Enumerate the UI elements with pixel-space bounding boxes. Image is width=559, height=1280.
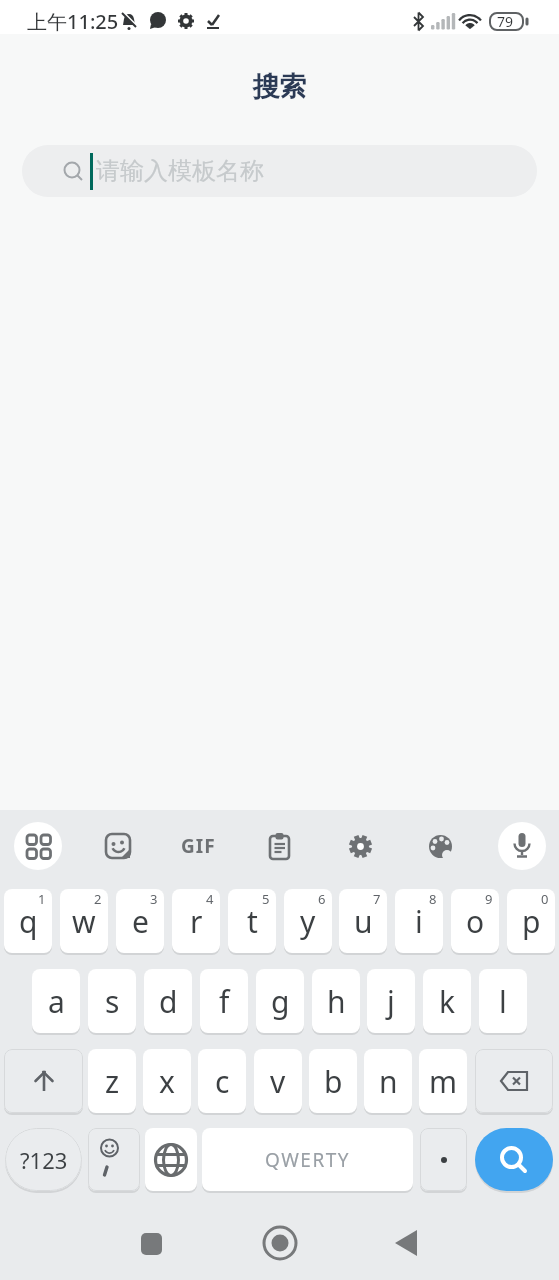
staticText: t	[247, 901, 258, 942]
button[interactable]: l	[479, 969, 527, 1033]
staticText: g	[271, 981, 290, 1022]
button[interactable]: d	[144, 969, 192, 1033]
staticText: 4	[206, 890, 214, 908]
button[interactable]: QWERTY	[202, 1128, 413, 1191]
staticText: m	[429, 1061, 458, 1102]
staticText: h	[327, 981, 346, 1022]
staticText: QWERTY	[265, 1147, 351, 1173]
staticText: 0	[541, 890, 549, 908]
staticText: k	[439, 981, 456, 1022]
button[interactable]: e	[116, 889, 164, 953]
staticText: e	[132, 901, 149, 942]
staticText: f	[219, 981, 230, 1022]
staticText: 9	[485, 890, 493, 908]
staticText: y	[300, 901, 316, 942]
button[interactable]: n	[364, 1049, 412, 1113]
button[interactable]: x	[143, 1049, 191, 1113]
staticText: q	[19, 901, 38, 942]
staticText: i	[415, 901, 423, 942]
staticText: 2	[94, 890, 102, 908]
staticText: c	[215, 1061, 230, 1102]
staticText: o	[466, 901, 485, 942]
button[interactable]: g	[256, 969, 304, 1033]
button[interactable]: z	[88, 1049, 136, 1113]
staticText: b	[324, 1061, 343, 1102]
button[interactable]: t	[228, 889, 276, 953]
button[interactable]: b	[309, 1049, 357, 1113]
staticText: w	[72, 901, 96, 942]
staticText: 79	[497, 12, 514, 31]
button[interactable]: v	[254, 1049, 302, 1113]
staticText: v	[270, 1061, 286, 1102]
button[interactable]	[94, 832, 142, 860]
staticText: 8	[429, 890, 437, 908]
staticText: x	[159, 1061, 175, 1102]
button[interactable]	[498, 822, 546, 870]
staticText: 7	[373, 890, 381, 908]
button[interactable]: s	[88, 969, 136, 1033]
staticText: j	[387, 981, 395, 1022]
button[interactable]: k	[423, 969, 471, 1033]
button[interactable]: w	[60, 889, 108, 953]
staticText: GIF	[181, 833, 216, 859]
button[interactable]	[420, 1128, 467, 1191]
staticText: p	[522, 901, 541, 942]
button[interactable]: p	[507, 889, 555, 953]
button[interactable]: f	[200, 969, 248, 1033]
button[interactable]	[4, 1049, 83, 1113]
staticText: ?123	[20, 1145, 68, 1175]
staticText: 上午11:25	[27, 8, 119, 35]
button[interactable]	[475, 1128, 553, 1191]
button[interactable]: y	[284, 889, 332, 953]
staticText: 6	[318, 890, 326, 908]
staticText: r	[190, 901, 203, 942]
staticText: n	[379, 1061, 398, 1102]
button[interactable]: j	[367, 969, 415, 1033]
button[interactable]: i	[395, 889, 443, 953]
button[interactable]	[14, 822, 62, 870]
button[interactable]	[88, 1128, 140, 1191]
staticText: l	[499, 981, 507, 1022]
staticText: z	[105, 1061, 120, 1102]
button[interactable]: a	[32, 969, 80, 1033]
staticText: a	[48, 981, 65, 1022]
button[interactable]	[255, 832, 303, 860]
staticText: 5	[262, 890, 270, 908]
button[interactable]: u	[339, 889, 387, 953]
button[interactable]	[416, 832, 464, 860]
staticText: d	[159, 981, 178, 1022]
button[interactable]	[475, 1049, 553, 1113]
staticText: 搜索	[0, 70, 559, 104]
button[interactable]: o	[451, 889, 499, 953]
staticText: 3	[150, 890, 158, 908]
staticText: s	[105, 981, 120, 1022]
button[interactable]	[336, 832, 384, 860]
staticText: 请输入模板名称	[96, 156, 264, 186]
button[interactable]: m	[419, 1049, 467, 1113]
button[interactable]: r	[172, 889, 220, 953]
staticText: u	[354, 901, 373, 942]
button[interactable]: h	[312, 969, 360, 1033]
button[interactable]: c	[198, 1049, 246, 1113]
staticText: 1	[38, 890, 46, 908]
button[interactable]: ?123	[5, 1128, 82, 1191]
button[interactable]: 请输入模板名称	[22, 145, 537, 197]
button[interactable]: q	[4, 889, 52, 953]
button[interactable]	[145, 1128, 197, 1191]
button[interactable]: GIF	[174, 832, 222, 860]
